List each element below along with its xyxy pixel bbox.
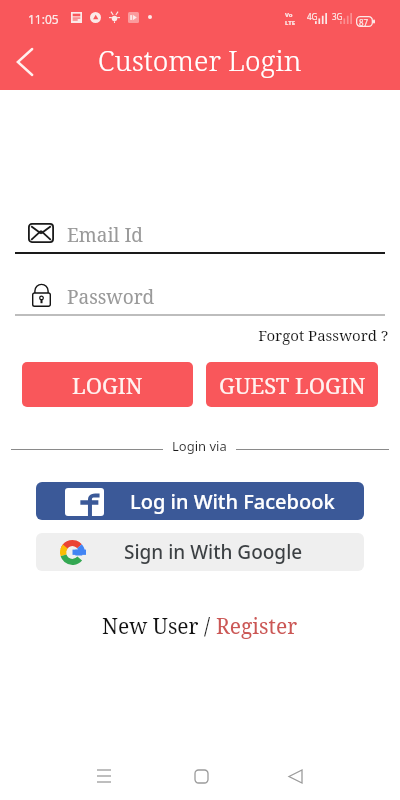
button[interactable]: Recent apps xyxy=(80,752,128,800)
button[interactable]: Password xyxy=(15,280,385,314)
button[interactable]: Forgot Password ? xyxy=(0,325,388,345)
staticText: Log in With Facebook xyxy=(130,488,335,515)
button[interactable]: Back xyxy=(271,752,319,800)
button[interactable]: Log in With Facebook xyxy=(36,482,364,520)
staticText: 87 xyxy=(359,17,369,28)
button[interactable]: Email Id xyxy=(15,218,385,252)
staticText: GUEST LOGIN xyxy=(219,370,366,400)
staticText: Sign in With Google xyxy=(124,539,303,565)
button[interactable]: LOGIN xyxy=(22,362,193,407)
staticText: Login via xyxy=(172,437,227,455)
staticText: LTE xyxy=(285,19,296,27)
button[interactable]: Register xyxy=(216,612,298,641)
button[interactable]: GUEST LOGIN xyxy=(206,362,378,407)
button[interactable]: Back xyxy=(1,38,49,86)
button[interactable]: Home xyxy=(177,752,225,800)
staticText: 11:05 xyxy=(28,11,59,27)
staticText: 4G xyxy=(307,11,318,22)
staticText: Customer Login xyxy=(98,41,302,79)
staticText: LOGIN xyxy=(72,370,143,400)
staticText: New User / xyxy=(102,612,216,641)
staticText: 3G xyxy=(332,11,343,22)
button[interactable]: Sign in With Google xyxy=(36,533,364,571)
staticText: Vo xyxy=(285,11,293,19)
staticText: Email Id xyxy=(67,222,144,248)
staticText: Password xyxy=(67,284,155,310)
